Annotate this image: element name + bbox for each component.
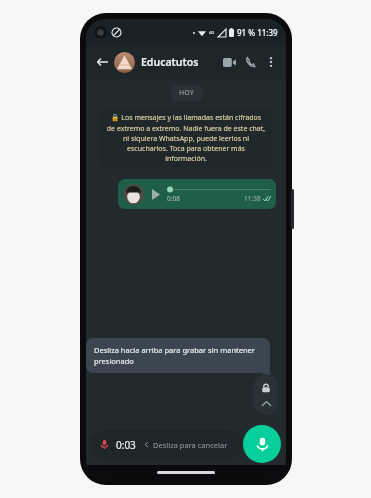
button[interactable]: 🔒 Los mensajes y las llamadas están cifr…: [100, 109, 272, 167]
button[interactable]: Video call: [218, 51, 240, 73]
staticText: 91 % 11:39: [237, 27, 278, 38]
staticText: 4G: [209, 30, 215, 35]
staticText: 0:03: [116, 438, 136, 452]
button[interactable]: Voice call: [240, 51, 262, 73]
button[interactable]: Desliza hacia arriba para grabar sin man…: [86, 338, 270, 373]
staticText: Desliza hacia arriba para grabar sin man…: [94, 345, 262, 366]
staticText: 11:38: [244, 194, 261, 203]
other: Recording: [100, 440, 109, 449]
staticText: HOY: [179, 88, 194, 98]
staticText: 🔒 Los mensajes y las llamadas están cifr…: [106, 113, 266, 163]
other: Play voice message: [150, 189, 161, 200]
button[interactable]: More options: [262, 53, 280, 71]
button[interactable]: Profile photo: [114, 52, 135, 73]
staticText: 0:08: [167, 194, 180, 203]
button[interactable]: Play voice message: [118, 179, 276, 209]
button[interactable]: Back: [92, 52, 112, 72]
button[interactable]: Send voice message: [243, 425, 281, 463]
staticText: Educatutos: [141, 55, 218, 69]
staticText: Desliza para cancelar: [153, 440, 228, 450]
button[interactable]: Lock recording: [254, 374, 278, 415]
